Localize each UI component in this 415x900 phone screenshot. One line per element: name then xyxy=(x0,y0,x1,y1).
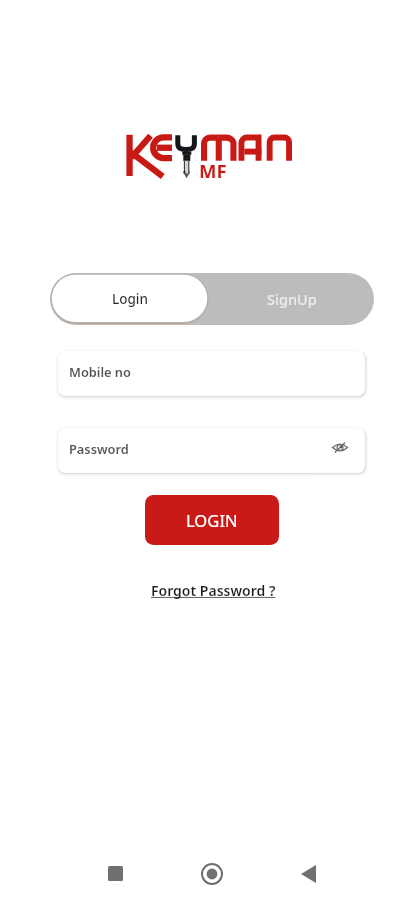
staticText: MF xyxy=(199,158,227,183)
button[interactable]: Forgot Password ? xyxy=(148,578,279,603)
button[interactable]: Home xyxy=(190,852,234,896)
staticText: Login xyxy=(112,290,148,308)
button[interactable]: LOGIN xyxy=(145,495,279,545)
button[interactable]: SignUp xyxy=(209,273,374,325)
button[interactable]: Login xyxy=(50,273,209,325)
staticText: Forgot Password ? xyxy=(151,581,276,600)
button[interactable]: Mobile no xyxy=(58,351,365,396)
button[interactable]: Recent apps xyxy=(93,851,137,895)
button[interactable]: Password xyxy=(58,428,365,473)
staticText: Password xyxy=(69,440,129,457)
button[interactable]: Show password xyxy=(328,435,352,459)
staticText: Mobile no xyxy=(69,363,131,380)
button[interactable]: Back xyxy=(286,852,330,896)
staticText: LOGIN xyxy=(186,509,238,532)
staticText: SignUp xyxy=(267,289,317,309)
